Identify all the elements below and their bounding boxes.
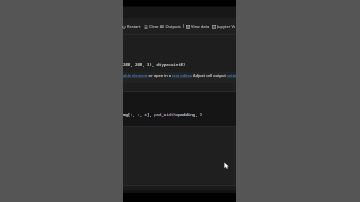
staticText: Restart xyxy=(127,24,141,29)
other: Jupyter variables xyxy=(212,25,216,29)
button[interactable]: Jupyter variables xyxy=(212,21,235,32)
button[interactable]: Restart xyxy=(122,21,141,32)
staticText: able element or open in a text editor. A… xyxy=(123,73,236,78)
staticText: View data xyxy=(191,24,210,29)
other: Restart xyxy=(122,25,126,29)
other: View data xyxy=(186,25,190,29)
staticText: Clear All Outputs xyxy=(149,24,181,29)
other: Clear all outputs xyxy=(144,25,148,29)
staticText: Jupyter Variables xyxy=(217,24,235,29)
staticText: mg[:, :, c], pad_width=padding, ) xyxy=(123,112,203,117)
button[interactable]: View data xyxy=(186,21,210,32)
staticText: 200, 200, 3), dtype=uint8) xyxy=(123,62,186,67)
button[interactable]: Clear all outputs xyxy=(144,21,181,32)
